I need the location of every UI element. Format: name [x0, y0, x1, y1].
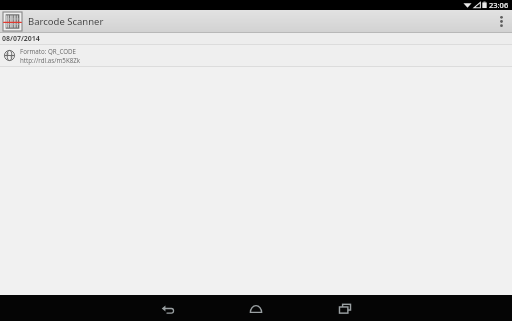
staticText: 08/07/2014: [2, 34, 40, 44]
button[interactable]: More options: [490, 10, 512, 32]
staticText: http://rdl.as/m5K8Zk: [20, 56, 81, 64]
button[interactable]: Barcode Scanner home: [0, 10, 110, 32]
button[interactable]: Formato: QR_CODE: [0, 45, 512, 66]
button[interactable]: Back: [150, 295, 184, 321]
staticText: Formato: QR_CODE: [20, 47, 77, 55]
button[interactable]: Home: [239, 295, 273, 321]
staticText: 23:06: [489, 0, 509, 10]
button[interactable]: Recent apps: [328, 295, 362, 321]
staticText: Barcode Scanner: [28, 15, 104, 28]
